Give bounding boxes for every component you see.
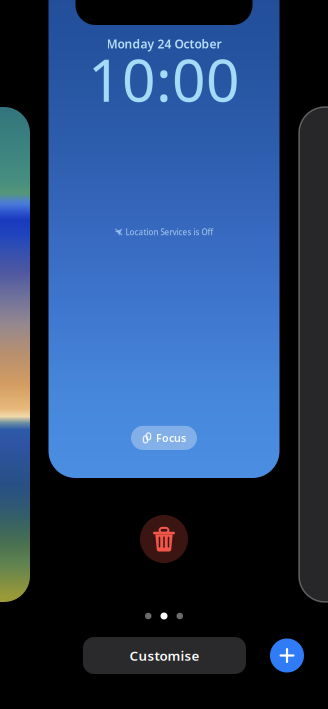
button[interactable]: Customise (83, 637, 246, 674)
button[interactable]: Previous wallpaper (0, 107, 30, 602)
staticText: 10:00 (88, 40, 240, 118)
button[interactable]: Add new wallpaper (299, 107, 328, 602)
staticText: Monday 24 October (106, 36, 221, 52)
button[interactable]: Delete (140, 515, 188, 563)
button[interactable]: Add (270, 638, 304, 672)
staticText: Focus (156, 431, 186, 445)
staticText: Customise (129, 647, 199, 664)
staticText: Location Services is Off (125, 227, 213, 237)
button[interactable]: Lock screen preview, 10:00 Monday 24 Oct… (48, 0, 279, 478)
